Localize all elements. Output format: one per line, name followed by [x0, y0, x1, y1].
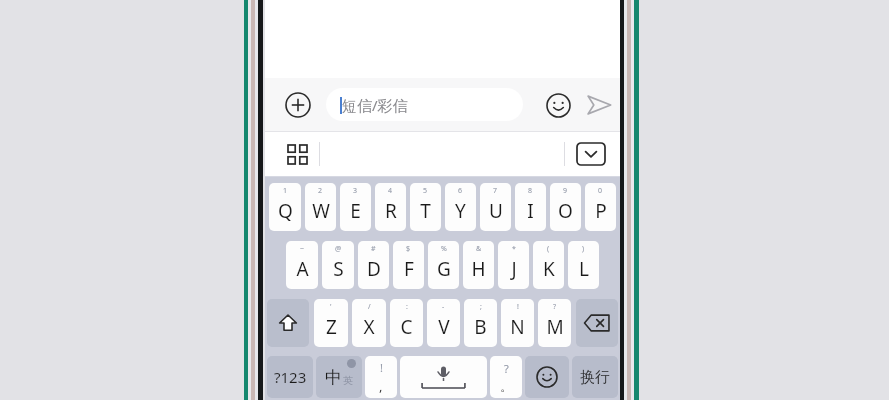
button[interactable]: @ [322, 241, 354, 289]
staticText: ? [504, 361, 509, 376]
staticText: A [296, 256, 309, 282]
staticText: ; [480, 302, 482, 312]
staticText: J [511, 256, 517, 282]
staticText: - [442, 302, 445, 312]
button[interactable]: ; [464, 299, 497, 347]
button[interactable]: Shift [267, 299, 309, 347]
staticText: S [333, 256, 344, 282]
button[interactable]: ) [568, 241, 599, 289]
button[interactable]: 4 [375, 183, 406, 231]
button[interactable]: 3 [340, 183, 371, 231]
button[interactable]: 0 [585, 183, 616, 231]
staticText: 3 [353, 186, 358, 196]
staticText: ! [380, 360, 383, 375]
button[interactable]: ( [533, 241, 564, 289]
button[interactable]: 1 [269, 183, 301, 231]
button[interactable]: 6 [445, 183, 476, 231]
button[interactable]: 中 [316, 356, 362, 398]
button[interactable]: Keyboard layouts [282, 139, 312, 169]
button[interactable]: Add attachment [283, 90, 313, 120]
button[interactable]: / [352, 299, 386, 347]
staticText: N [510, 314, 525, 340]
staticText: Q [278, 198, 293, 224]
staticText: 短信/彩信 [342, 95, 408, 115]
staticText: * [512, 244, 516, 254]
staticText: ( [547, 244, 550, 254]
staticText: C [400, 314, 413, 340]
button[interactable]: Emoji [543, 90, 573, 120]
staticText: ? [553, 302, 557, 312]
button[interactable]: ?123 [267, 356, 313, 398]
button[interactable]: Hide keyboard [576, 142, 606, 166]
staticText: , [379, 377, 383, 395]
staticText: I [527, 198, 534, 224]
button[interactable]: $ [393, 241, 424, 289]
staticText: F [404, 256, 414, 282]
staticText: ?123 [274, 367, 307, 387]
staticText: X [363, 314, 375, 340]
staticText: G [437, 256, 451, 282]
staticText: P [595, 198, 607, 224]
button[interactable]: 5 [410, 183, 441, 231]
staticText: U [489, 198, 503, 224]
button[interactable]: % [428, 241, 459, 289]
staticText: M [546, 314, 564, 340]
staticText: 1 [283, 186, 288, 196]
staticText: 换行 [580, 368, 610, 387]
staticText: ! [517, 302, 519, 312]
button[interactable]: ' [314, 299, 348, 347]
button[interactable]: : [390, 299, 423, 347]
staticText: ~ [300, 244, 305, 254]
button[interactable]: Backspace [576, 299, 618, 347]
staticText: 7 [493, 186, 498, 196]
button[interactable]: - [427, 299, 460, 347]
button[interactable]: Send [583, 89, 615, 121]
staticText: D [367, 256, 381, 282]
staticText: Y [455, 198, 466, 224]
button[interactable]: ? [490, 356, 522, 398]
staticText: O [558, 198, 573, 224]
staticText: 英 [343, 374, 353, 387]
staticText: W [312, 198, 330, 224]
staticText: 5 [423, 186, 428, 196]
staticText: 6 [458, 186, 463, 196]
staticText: R [385, 198, 397, 224]
staticText: % [441, 244, 447, 254]
button[interactable]: * [498, 241, 529, 289]
staticText: @ [335, 244, 342, 254]
staticText: ) [582, 244, 585, 254]
staticText: L [579, 256, 589, 282]
staticText: $ [406, 244, 411, 254]
staticText: V [438, 314, 450, 340]
staticText: E [350, 198, 361, 224]
button[interactable]: # [358, 241, 389, 289]
button[interactable]: 换行 [572, 356, 618, 398]
staticText: T [420, 198, 431, 224]
staticText: : [406, 302, 408, 312]
button[interactable]: ! [501, 299, 534, 347]
staticText: Z [326, 314, 337, 340]
staticText: B [474, 314, 487, 340]
staticText: K [543, 256, 555, 282]
button[interactable]: 7 [480, 183, 511, 231]
staticText: 8 [528, 186, 533, 196]
staticText: # [371, 244, 376, 254]
staticText: 2 [318, 186, 323, 196]
button[interactable]: & [463, 241, 494, 289]
staticText: 0 [598, 186, 603, 196]
button[interactable]: Emoji keyboard [525, 356, 569, 398]
staticText: ' [330, 302, 332, 312]
staticText: H [471, 256, 486, 282]
staticText: / [368, 302, 371, 312]
staticText: 4 [388, 186, 393, 196]
staticText: 。 [500, 378, 513, 394]
button[interactable]: ~ [286, 241, 318, 289]
button[interactable]: Space / voice input [400, 356, 487, 398]
button[interactable]: ? [538, 299, 571, 347]
button[interactable]: 8 [515, 183, 546, 231]
staticText: & [476, 244, 482, 254]
button[interactable]: 2 [305, 183, 336, 231]
button[interactable]: 短信/彩信 [326, 88, 523, 121]
button[interactable]: ! [365, 356, 397, 398]
button[interactable]: 9 [550, 183, 581, 231]
